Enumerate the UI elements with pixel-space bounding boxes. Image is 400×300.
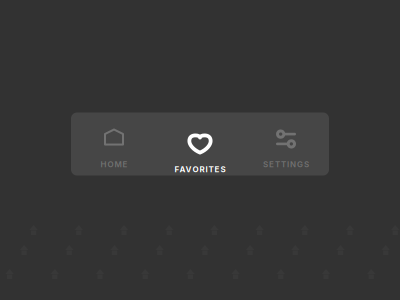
button[interactable]: SETTINGS xyxy=(243,112,329,175)
staticText: SETTINGS xyxy=(263,159,309,169)
button[interactable]: HOME xyxy=(71,112,157,175)
button[interactable]: FAVORITES xyxy=(157,112,243,175)
staticText: HOME xyxy=(100,159,127,169)
staticText: FAVORITES xyxy=(174,164,225,174)
